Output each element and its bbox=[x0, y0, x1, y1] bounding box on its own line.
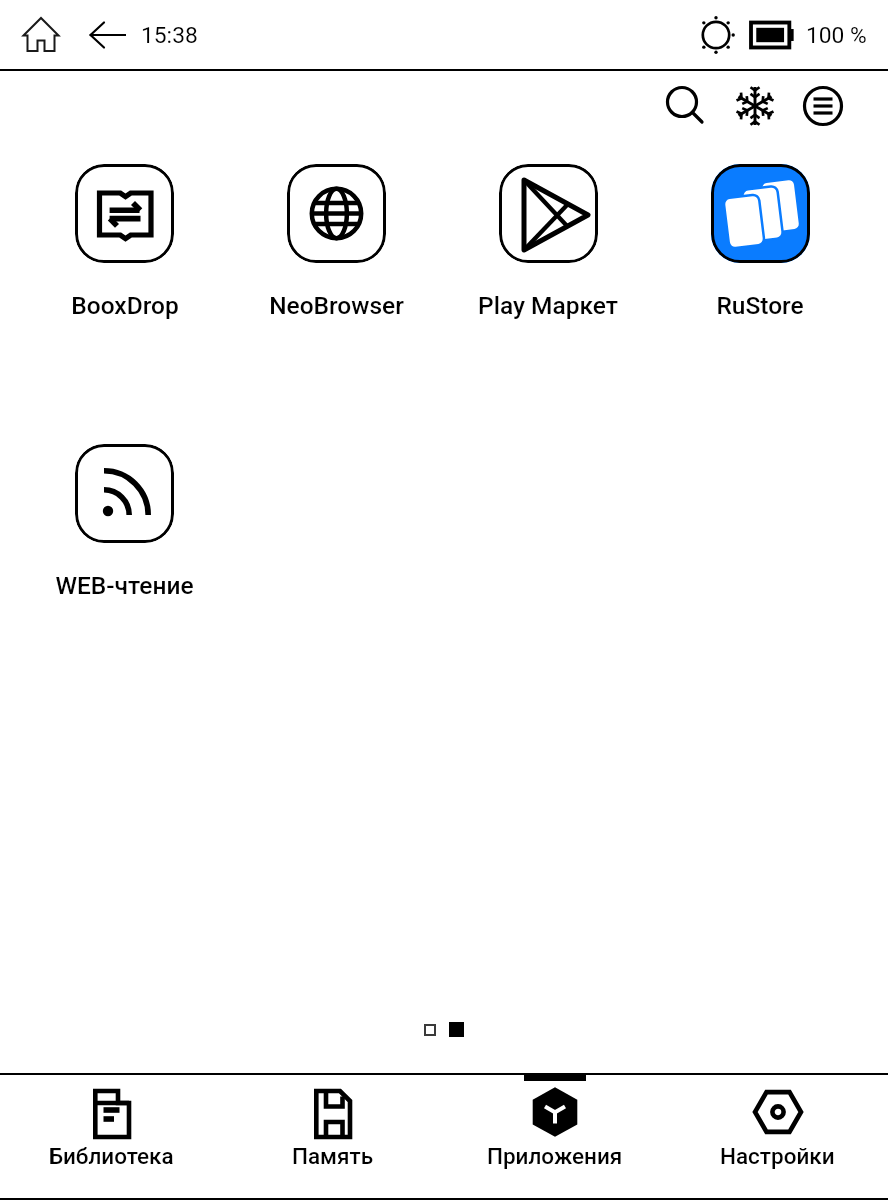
button[interactable]: Приложения bbox=[444, 1073, 666, 1198]
button[interactable]: Память bbox=[222, 1073, 444, 1198]
button[interactable]: BooxDrop bbox=[19, 164, 230, 320]
button[interactable]: Play Маркет bbox=[442, 164, 654, 320]
staticText: 100 % bbox=[806, 22, 867, 49]
button[interactable]: Brightness bbox=[694, 13, 738, 57]
button[interactable]: NeoBrowser bbox=[230, 164, 442, 320]
staticText: Библиотека bbox=[49, 1143, 174, 1169]
staticText: BooxDrop bbox=[71, 291, 179, 320]
staticText: 15:38 bbox=[141, 22, 198, 49]
button[interactable]: Home bbox=[20, 15, 60, 55]
button[interactable]: Библиотека bbox=[0, 1073, 222, 1198]
button[interactable]: RuStore bbox=[654, 164, 866, 320]
button[interactable]: Search bbox=[663, 84, 707, 128]
button[interactable]: Menu bbox=[801, 84, 845, 128]
button[interactable]: Настройки bbox=[666, 1073, 888, 1198]
staticText: Память bbox=[292, 1143, 374, 1169]
staticText: Play Маркет bbox=[478, 291, 618, 320]
staticText: NeoBrowser bbox=[269, 291, 404, 320]
staticText: RuStore bbox=[716, 291, 804, 320]
button[interactable]: WEB-чтение bbox=[19, 444, 230, 600]
button[interactable]: Freeze bbox=[733, 84, 777, 128]
button[interactable]: Page 1 bbox=[424, 1024, 436, 1036]
staticText: Приложения bbox=[487, 1143, 623, 1169]
button[interactable]: Back bbox=[88, 15, 128, 55]
staticText: Настройки bbox=[720, 1143, 835, 1169]
staticText: WEB-чтение bbox=[55, 571, 194, 600]
